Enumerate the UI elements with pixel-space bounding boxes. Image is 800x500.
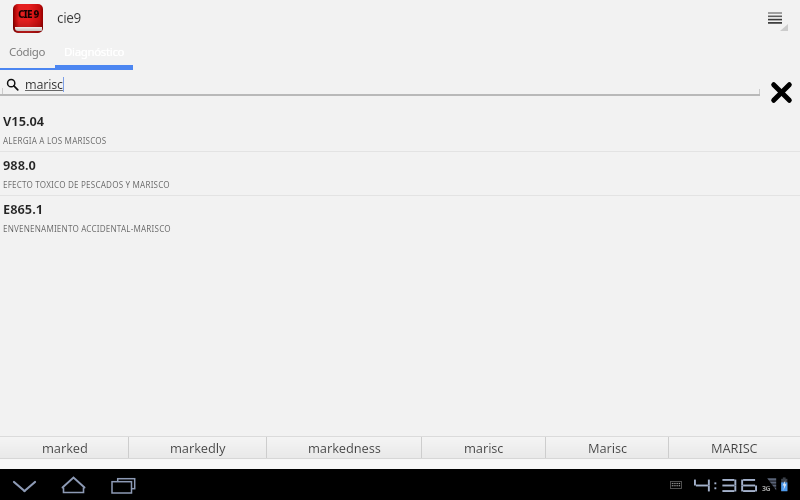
button[interactable]: MARISC (669, 437, 800, 458)
button[interactable]: V15.04 (0, 108, 800, 151)
staticText: CIE 9 (18, 7, 39, 21)
staticText: 3G (762, 484, 770, 494)
staticText: marked (42, 439, 88, 456)
button[interactable]: Home (57, 469, 95, 495)
button[interactable]: 988.0 (0, 152, 800, 195)
staticText: marisc (25, 76, 63, 93)
button[interactable]: Hide keyboard (7, 469, 43, 493)
staticText: markedly (170, 439, 226, 456)
staticText: E865.1 (3, 200, 44, 217)
button[interactable]: cie9 app icon (13, 4, 43, 33)
staticText: Marisc (588, 439, 628, 456)
staticText: V15.04 (3, 112, 45, 129)
button[interactable]: Diagnóstico (55, 36, 133, 70)
button[interactable]: Marisc (546, 437, 669, 458)
staticText: marisc (464, 439, 504, 456)
staticText: cie9 (57, 9, 81, 27)
staticText: EFECTO TOXICO DE PESCADOS Y MARISCO (3, 179, 170, 190)
staticText: MARISC (711, 439, 758, 456)
button[interactable]: marked (0, 437, 129, 458)
staticText: ALERGIA A LOS MARISCOS (3, 135, 107, 146)
staticText: Código (9, 44, 46, 60)
button[interactable]: Código (0, 36, 55, 70)
button[interactable]: E865.1 (0, 196, 800, 239)
staticText: ENVENENAMIENTO ACCIDENTAL-MARISCO (3, 223, 171, 234)
button[interactable]: Recent apps (106, 473, 142, 499)
staticText: Diagnóstico (64, 44, 125, 60)
button[interactable]: markedness (267, 437, 422, 458)
staticText: 988.0 (3, 156, 36, 173)
button[interactable]: Clear search (767, 78, 796, 107)
staticText: markedness (308, 439, 381, 456)
button[interactable]: markedly (129, 437, 267, 458)
button[interactable]: marisc (422, 437, 546, 458)
button[interactable]: More options (760, 0, 800, 36)
